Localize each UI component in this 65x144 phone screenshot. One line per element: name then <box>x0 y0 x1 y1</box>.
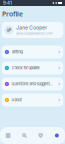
staticText: About <box>11 98 21 102</box>
staticText: jane.cooper@mail.com <box>16 31 53 35</box>
staticText: 9:41 <box>3 0 12 6</box>
button[interactable]: Search <box>16 127 32 144</box>
button[interactable]: Home <box>0 127 16 144</box>
button[interactable]: Jane Cooper <box>2 22 63 38</box>
staticText: Check for update <box>11 66 39 70</box>
staticText: Setting <box>11 50 22 54</box>
button[interactable]: Setting <box>2 45 63 58</box>
button[interactable]: Questions and Suggestion <box>2 77 63 90</box>
staticText: Profile <box>2 10 23 18</box>
button[interactable]: Favorites <box>32 127 49 144</box>
staticText: Jane Cooper <box>16 25 47 30</box>
button[interactable]: Check for update <box>2 61 63 74</box>
staticText: Questions and Suggestion <box>11 82 53 86</box>
button[interactable]: Profile <box>49 127 65 144</box>
button[interactable]: About <box>2 93 63 106</box>
